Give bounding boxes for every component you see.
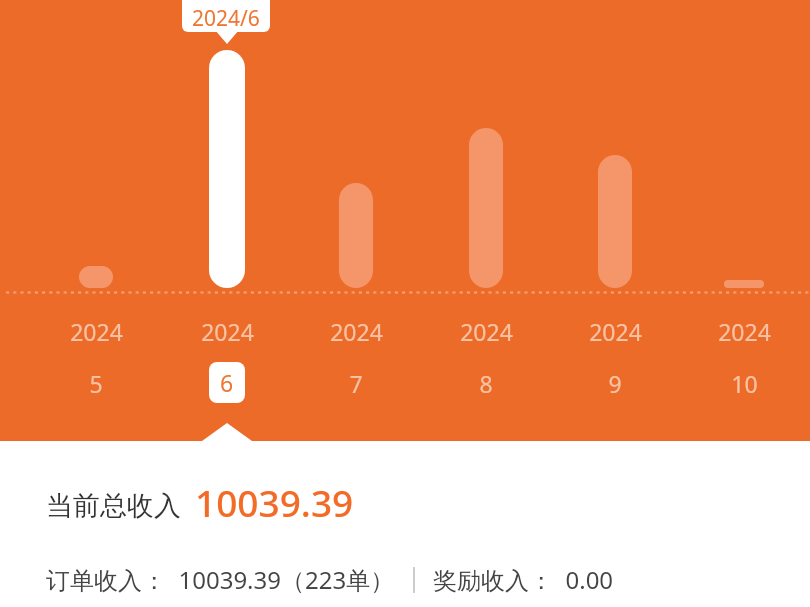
button[interactable]: 订单收入： 10039.39（223单）: [46, 563, 395, 596]
button[interactable]: 9: [585, 368, 645, 400]
staticText: 2024/6: [192, 4, 260, 32]
button[interactable]: 2024: [699, 316, 789, 350]
button[interactable]: 2024: [311, 316, 401, 350]
button[interactable]: 奖励收入： 0.00: [433, 563, 614, 596]
staticText: 7: [349, 368, 363, 399]
button[interactable]: 5: [66, 368, 126, 400]
button[interactable]: 6: [209, 362, 245, 403]
staticText: 5: [89, 368, 103, 399]
other: Selected month marker: [215, 30, 239, 44]
staticText: 6: [220, 367, 234, 398]
button[interactable]: 2024: [182, 316, 272, 350]
button[interactable]: 2024/6: [182, 0, 270, 32]
staticText: 2024: [201, 316, 254, 347]
staticText: 9: [608, 368, 622, 399]
button[interactable]: 7: [326, 368, 386, 400]
button[interactable]: 2024: [441, 316, 531, 350]
staticText: 10039.39: [195, 477, 354, 527]
staticText: 10: [731, 368, 758, 399]
staticText: 2024: [589, 316, 642, 347]
staticText: 2024: [70, 316, 123, 347]
staticText: 2024: [718, 316, 771, 347]
staticText: 2024: [330, 316, 383, 347]
staticText: 8: [479, 368, 493, 399]
button[interactable]: 2024: [51, 316, 141, 350]
button[interactable]: 10: [714, 368, 774, 400]
staticText: 2024: [460, 316, 513, 347]
staticText: 当前总收入: [46, 489, 181, 523]
button[interactable]: 当前总收入: [46, 477, 810, 527]
button[interactable]: 2024: [570, 316, 660, 350]
button[interactable]: 8: [456, 368, 516, 400]
